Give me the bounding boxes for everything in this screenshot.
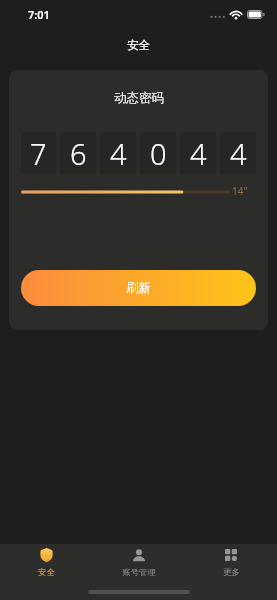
staticText: 安全 (38, 567, 55, 577)
staticText: 14" (232, 184, 256, 198)
staticText: 7 (30, 134, 47, 173)
staticText: 7:01 (28, 7, 50, 22)
other: More (225, 549, 237, 561)
staticText: 更多 (223, 567, 240, 577)
staticText: 6 (70, 134, 87, 173)
staticText: 4 (230, 134, 247, 173)
staticText: 刷新 (126, 280, 151, 296)
other: Accounts (133, 549, 145, 562)
button[interactable]: More (185, 544, 277, 580)
staticText: 0 (150, 134, 167, 173)
staticText: 4 (110, 134, 127, 173)
staticText: 动态密码 (114, 90, 164, 106)
other: Security (40, 548, 53, 562)
button[interactable]: 刷新 (21, 270, 256, 306)
button[interactable]: Accounts (93, 544, 185, 580)
staticText: 安全 (127, 38, 150, 52)
staticText: 账号管理 (122, 567, 156, 577)
button[interactable]: Security (0, 544, 93, 580)
staticText: 4 (190, 134, 207, 173)
